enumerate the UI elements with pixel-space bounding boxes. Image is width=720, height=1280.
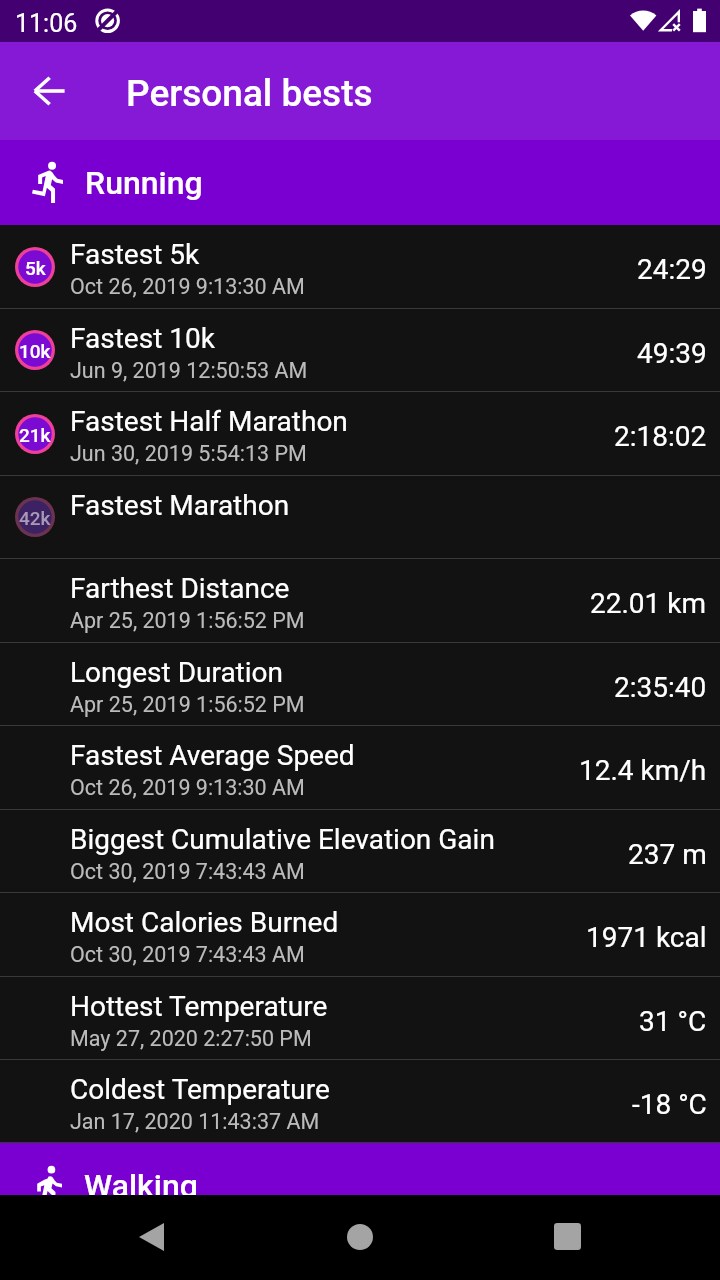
staticText: Apr 25, 2019 1:56:52 PM [70,692,305,717]
button[interactable]: Home [240,1195,480,1280]
staticText: 21k [19,424,51,446]
staticText: 10k [19,340,51,362]
staticText: Fastest 10k [70,322,215,355]
staticText: Biggest Cumulative Elevation Gain [70,823,495,856]
staticText: Most Calories Burned [70,906,339,939]
staticText: 237 m [628,838,707,871]
staticText: Farthest Distance [70,572,290,605]
button[interactable]: Running [0,140,720,225]
button[interactable]: Recent apps [480,1195,720,1280]
staticText: 22.01 km [590,587,707,620]
button[interactable]: 10k [0,309,720,392]
button[interactable]: 5k [0,225,720,309]
staticText: Oct 30, 2019 7:43:43 AM [70,942,305,967]
staticText: Fastest Marathon [70,489,290,522]
staticText: 2:18:02 [614,420,707,453]
staticText: Jan 17, 2020 11:43:37 AM [70,1109,320,1134]
staticText: -18 °C [632,1088,707,1121]
button[interactable]: Navigate up [26,67,74,115]
button[interactable]: Walking [0,1143,720,1195]
staticText: 1971 kcal [586,921,707,954]
staticText: Walking [84,1167,198,1195]
staticText: 2:35:40 [614,671,707,704]
staticText: 49:39 [637,337,707,370]
staticText: Jun 9, 2019 12:50:53 AM [70,358,308,383]
staticText: Fastest 5k [70,238,200,271]
button[interactable]: Coldest Temperature [0,1060,720,1143]
staticText: 24:29 [637,253,707,286]
staticText: Running [85,164,203,202]
button[interactable]: Most Calories Burned [0,893,720,977]
staticText: Oct 26, 2019 9:13:30 AM [70,775,305,800]
button[interactable]: Back [0,1195,240,1280]
button[interactable]: Longest Duration [0,643,720,726]
staticText: 5k [25,257,46,279]
staticText: 11:06 [15,9,78,38]
staticText: Fastest Half Marathon [70,405,348,438]
staticText: 31 °C [639,1005,707,1038]
staticText: Coldest Temperature [70,1073,330,1106]
staticText: Oct 26, 2019 9:13:30 AM [70,274,305,299]
staticText: Hottest Temperature [70,990,328,1023]
button[interactable]: Biggest Cumulative Elevation Gain [0,810,720,893]
button[interactable]: Farthest Distance [0,559,720,643]
staticText: Oct 30, 2019 7:43:43 AM [70,859,305,884]
staticText: Apr 25, 2019 1:56:52 PM [70,608,305,633]
button[interactable]: 42k [0,476,720,559]
staticText: 12.4 km/h [579,754,707,787]
button[interactable]: Fastest Average Speed [0,726,720,810]
staticText: May 27, 2020 2:27:50 PM [70,1026,312,1051]
button[interactable]: 21k [0,392,720,476]
staticText: 42k [19,507,51,529]
button[interactable]: Hottest Temperature [0,977,720,1060]
staticText: Longest Duration [70,656,284,689]
staticText: Jun 30, 2019 5:54:13 PM [70,441,307,466]
staticText: Personal bests [126,72,373,115]
staticText: Fastest Average Speed [70,739,355,772]
